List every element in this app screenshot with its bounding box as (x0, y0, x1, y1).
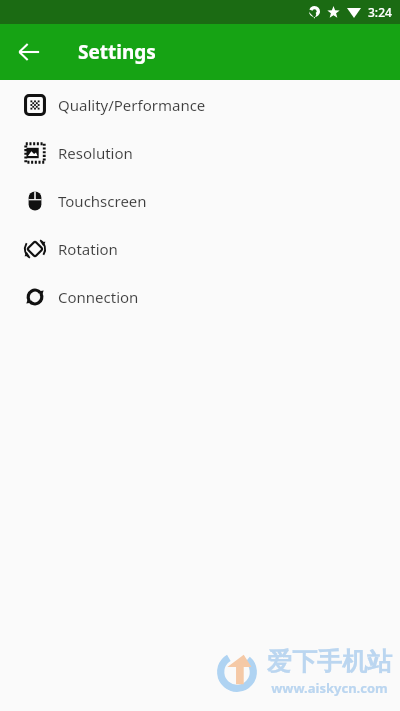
staticText: Quality/Performance (58, 95, 206, 115)
button[interactable]: Rotation (0, 225, 400, 273)
staticText: 爱下手机站 (267, 646, 392, 677)
staticText: 3:24 (368, 4, 392, 20)
staticText: www.aiskycn.com (271, 679, 388, 697)
button[interactable]: Connection (0, 273, 400, 321)
staticText: Touchscreen (58, 191, 147, 211)
button[interactable]: Quality/Performance (0, 81, 400, 129)
button[interactable]: Back (8, 31, 50, 73)
staticText: Resolution (58, 143, 133, 163)
staticText: Rotation (58, 239, 118, 259)
button[interactable]: Touchscreen (0, 177, 400, 225)
staticText: Connection (58, 287, 139, 307)
button[interactable]: Resolution (0, 129, 400, 177)
staticText: Settings (78, 39, 156, 65)
